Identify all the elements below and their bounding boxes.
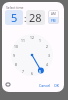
button[interactable]: Cancel [37, 81, 53, 90]
staticText: 12 [30, 35, 34, 40]
staticText: 28 [29, 10, 42, 25]
staticText: Select time [6, 5, 24, 10]
button[interactable]: Switch to text input [4, 81, 11, 88]
staticText: 5 [11, 10, 18, 25]
staticText: 2 [46, 44, 48, 49]
staticText: : [24, 12, 27, 24]
button[interactable]: 28 [26, 10, 45, 25]
button[interactable]: OK [52, 81, 62, 90]
button[interactable]: 5 [5, 10, 23, 25]
staticText: PM [51, 19, 56, 23]
staticText: 6 [31, 71, 33, 76]
button[interactable]: AM [48, 10, 59, 17]
staticText: 1 [39, 38, 41, 43]
staticText: 8 [15, 62, 17, 67]
staticText: 3 [48, 53, 50, 58]
staticText: 7 [22, 69, 24, 74]
staticText: 9 [13, 53, 15, 58]
staticText: AM [51, 12, 56, 16]
staticText: Cancel [39, 83, 51, 88]
staticText: 4 [46, 62, 48, 67]
staticText: 10 [14, 44, 18, 49]
staticText: 11 [21, 38, 25, 43]
button[interactable]: PM [48, 17, 59, 24]
staticText: OK [54, 83, 60, 88]
staticText: 5 [39, 69, 41, 74]
